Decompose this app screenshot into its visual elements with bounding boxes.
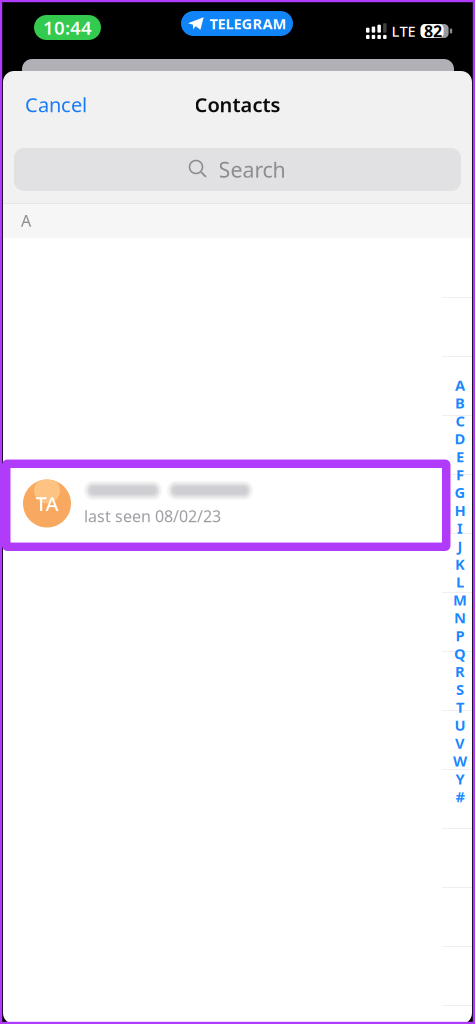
staticText: L — [456, 572, 464, 592]
staticText: P — [455, 626, 464, 645]
staticText: 10:44 — [43, 15, 92, 40]
button[interactable]: TA — [3, 474, 472, 533]
staticText: W — [453, 751, 467, 771]
staticText: Search — [218, 155, 285, 184]
staticText: C — [455, 411, 464, 430]
staticText: V — [455, 733, 465, 753]
staticText: TA — [35, 490, 58, 517]
staticText: LTE — [392, 21, 416, 41]
staticText: T — [456, 697, 464, 717]
staticText: # — [455, 787, 464, 806]
staticText: F — [456, 465, 464, 484]
staticText: A — [21, 210, 31, 231]
staticText: I — [457, 518, 463, 538]
staticText: A — [455, 375, 465, 395]
staticText: Y — [455, 769, 464, 788]
staticText: R — [455, 662, 465, 681]
staticText: 82 — [424, 20, 442, 42]
staticText: Q — [454, 644, 466, 663]
staticText: H — [454, 500, 465, 520]
staticText: Cancel — [25, 91, 87, 118]
staticText: Contacts — [194, 91, 280, 118]
staticText: B — [455, 393, 465, 413]
staticText: J — [457, 536, 462, 556]
staticText: S — [456, 679, 464, 699]
staticText: E — [456, 447, 464, 466]
staticText: D — [454, 429, 465, 448]
staticText: N — [454, 608, 466, 627]
staticText: TELEGRAM — [209, 14, 286, 33]
button[interactable]: Cancel — [23, 82, 89, 127]
staticText: U — [454, 715, 465, 735]
staticText: K — [455, 554, 465, 574]
staticText: G — [454, 483, 465, 502]
staticText: M — [453, 590, 467, 609]
staticText: last seen 08/02/23 — [84, 505, 221, 527]
